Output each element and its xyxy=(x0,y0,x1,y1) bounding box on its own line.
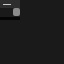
button[interactable] xyxy=(13,8,20,16)
